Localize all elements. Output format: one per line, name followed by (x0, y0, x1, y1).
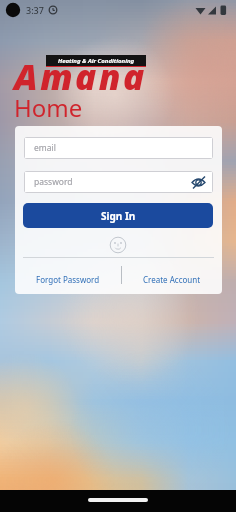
button[interactable]: password (25, 172, 212, 192)
staticText: email (34, 142, 56, 154)
staticText: 3:37 (26, 4, 44, 16)
staticText: password (34, 176, 73, 188)
button[interactable]: Forgot Password (15, 268, 121, 290)
button[interactable] (109, 236, 127, 254)
staticText: Create Account (143, 274, 201, 285)
staticText: Amana (14, 53, 147, 101)
button[interactable]: email (25, 138, 212, 158)
button[interactable]: Create Account (122, 268, 222, 290)
staticText: Forgot Password (36, 274, 100, 285)
button[interactable] (88, 498, 148, 502)
staticText: Heating & Air Conditioning (58, 57, 135, 65)
button[interactable]: Sign In (23, 203, 213, 228)
staticText: Home (14, 91, 83, 124)
staticText: Sign In (101, 209, 136, 223)
